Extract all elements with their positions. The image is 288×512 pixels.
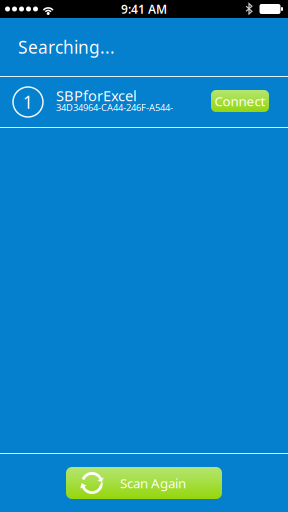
staticText: SBPforExcel	[56, 86, 137, 105]
staticText: Scan Again	[120, 474, 186, 492]
button[interactable]: Scan Again	[66, 467, 222, 499]
staticText: Searching...	[18, 35, 115, 58]
staticText: 1	[23, 90, 33, 113]
staticText: 34D34964-CA44-246F-A544-	[56, 101, 173, 114]
button[interactable]: 1	[0, 77, 288, 127]
staticText: 9:41 AM	[121, 1, 167, 17]
staticText: Connect	[214, 92, 265, 110]
